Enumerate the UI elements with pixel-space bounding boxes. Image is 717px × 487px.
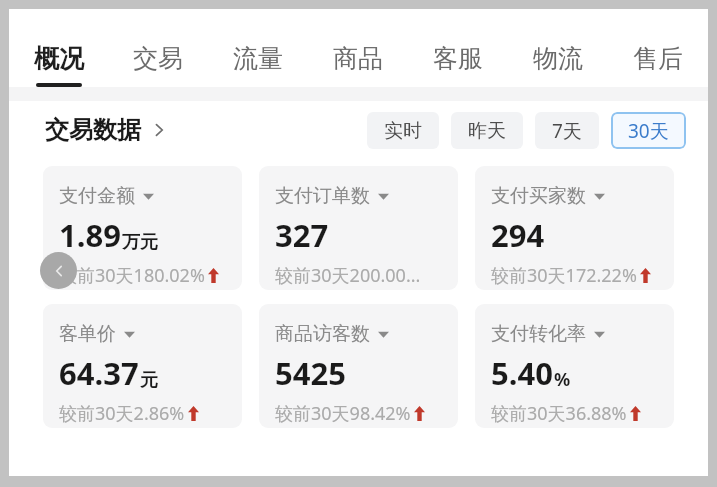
button[interactable]: 7天 bbox=[535, 112, 599, 149]
staticText: 客单价 bbox=[59, 322, 116, 346]
button[interactable]: 客单价 bbox=[43, 304, 242, 428]
staticText: 元 bbox=[140, 369, 158, 392]
staticText: 较前30天180.02% bbox=[59, 263, 205, 288]
staticText: 较前30天36.88% bbox=[491, 401, 627, 426]
staticText: 流量 bbox=[233, 43, 283, 74]
staticText: 概况 bbox=[34, 43, 84, 74]
button[interactable]: 概况 bbox=[9, 9, 108, 87]
staticText: 万元 bbox=[122, 231, 158, 254]
button[interactable]: 售后 bbox=[608, 9, 708, 87]
button[interactable]: 客服 bbox=[408, 9, 508, 87]
staticText: 支付转化率 bbox=[491, 322, 586, 346]
staticText: 售后 bbox=[633, 43, 683, 74]
staticText: 7天 bbox=[552, 118, 582, 144]
button[interactable]: 支付金额 bbox=[43, 166, 242, 290]
staticText: 昨天 bbox=[468, 119, 506, 143]
button[interactable]: 交易数据 bbox=[45, 115, 167, 145]
staticText: 较前30天172.22% bbox=[491, 263, 637, 288]
staticText: 交易数据 bbox=[45, 115, 141, 145]
staticText: 1.89 bbox=[59, 214, 121, 256]
staticText: 较前30天200.00... bbox=[275, 263, 421, 288]
staticText: 商品访客数 bbox=[275, 322, 370, 346]
staticText: 交易 bbox=[133, 43, 183, 74]
button[interactable]: 支付买家数 bbox=[475, 166, 674, 290]
staticText: 294 bbox=[491, 214, 545, 256]
staticText: 商品 bbox=[333, 43, 383, 74]
button[interactable]: 支付订单数 bbox=[259, 166, 458, 290]
button[interactable]: 商品访客数 bbox=[259, 304, 458, 428]
staticText: 较前30天98.42% bbox=[275, 401, 411, 426]
staticText: 支付买家数 bbox=[491, 184, 586, 208]
button[interactable]: 昨天 bbox=[451, 112, 523, 149]
button[interactable]: 物流 bbox=[508, 9, 608, 87]
staticText: 30天 bbox=[628, 118, 669, 144]
staticText: 5.40 bbox=[491, 352, 553, 394]
staticText: 实时 bbox=[384, 119, 422, 143]
staticText: 客服 bbox=[433, 43, 483, 74]
staticText: 支付订单数 bbox=[275, 184, 370, 208]
staticText: 5425 bbox=[275, 352, 346, 394]
button[interactable]: Previous bbox=[40, 252, 77, 289]
button[interactable]: 交易 bbox=[108, 9, 208, 87]
staticText: 物流 bbox=[533, 43, 583, 74]
staticText: 支付金额 bbox=[59, 184, 135, 208]
staticText: 较前30天2.86% bbox=[59, 401, 185, 426]
button[interactable]: 流量 bbox=[208, 9, 308, 87]
button[interactable]: 商品 bbox=[308, 9, 408, 87]
staticText: 327 bbox=[275, 214, 329, 256]
button[interactable]: 30天 bbox=[611, 112, 686, 149]
button[interactable]: 支付转化率 bbox=[475, 304, 674, 428]
staticText: % bbox=[554, 367, 571, 392]
button[interactable]: 实时 bbox=[367, 112, 439, 149]
staticText: 64.37 bbox=[59, 352, 139, 394]
